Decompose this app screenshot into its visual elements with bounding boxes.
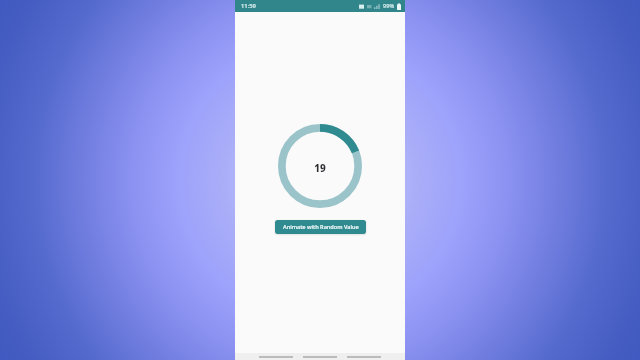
staticText: 99%: [383, 2, 395, 10]
staticText: Animate with Random Value: [283, 223, 359, 231]
button[interactable]: Animate with Random Value: [275, 220, 366, 234]
staticText: 19: [314, 161, 326, 175]
staticText: 11:59: [241, 2, 256, 10]
